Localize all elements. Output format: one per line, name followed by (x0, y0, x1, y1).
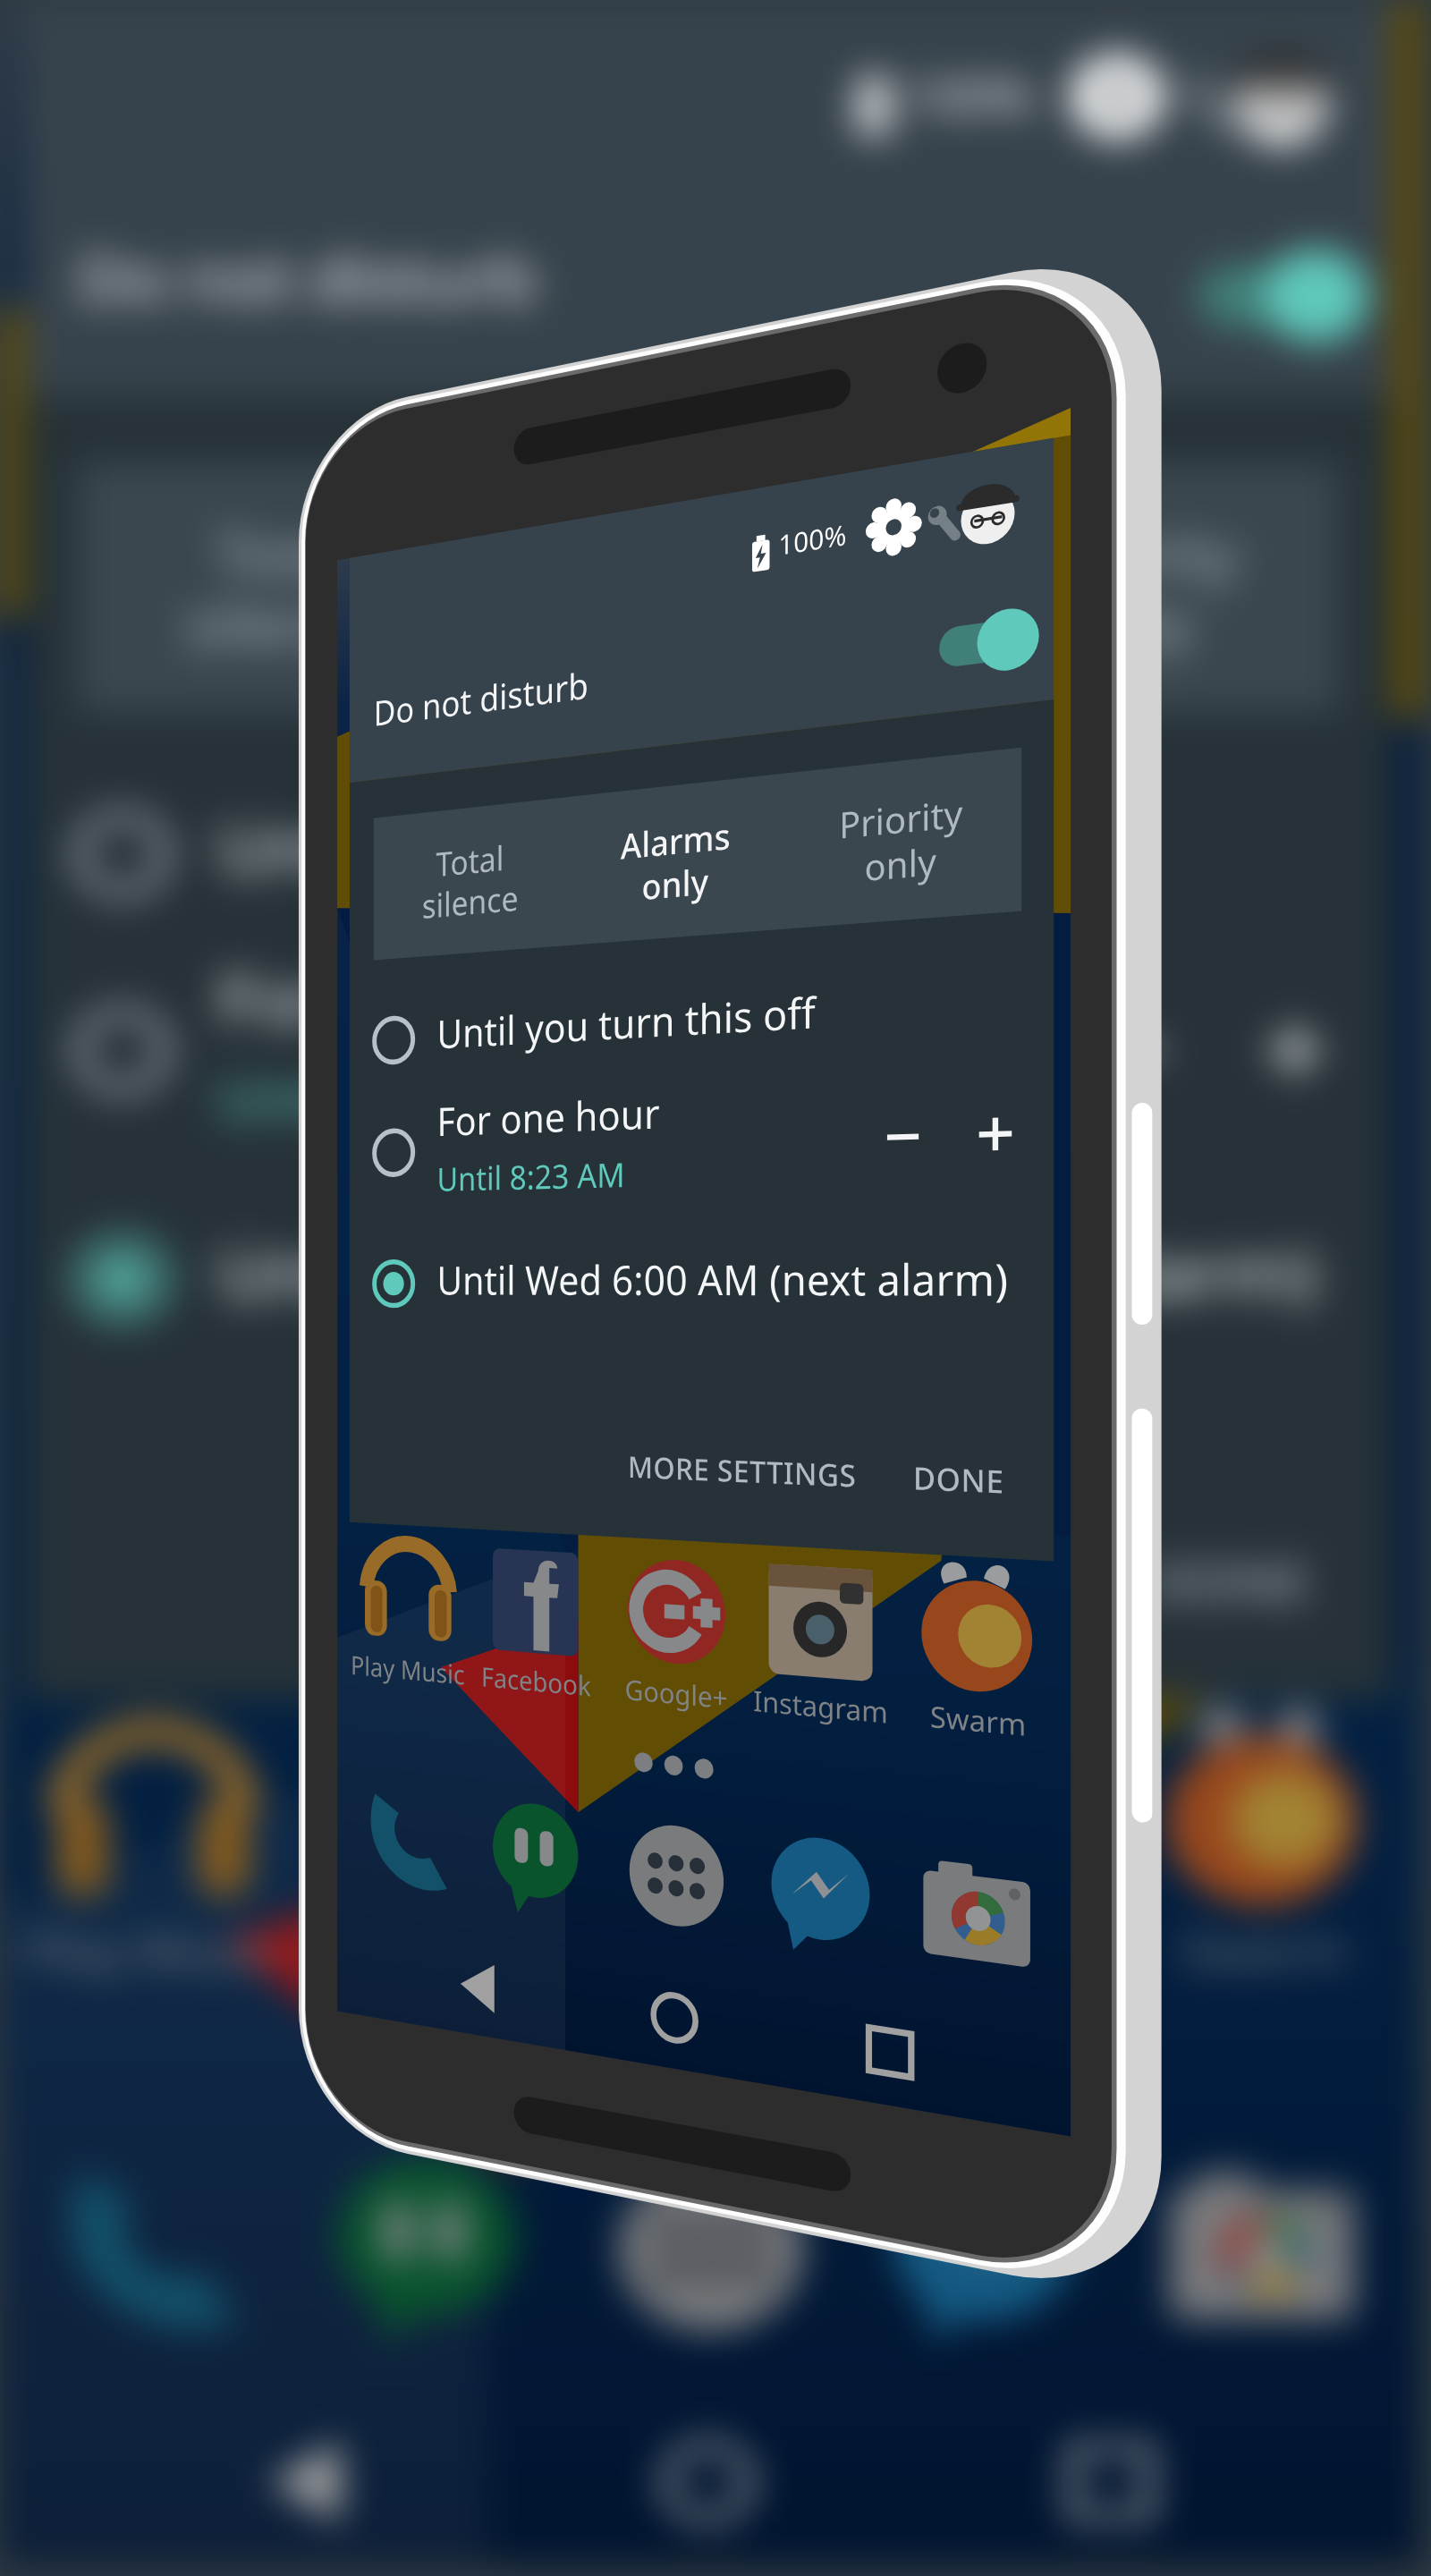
staticText: Priority only (839, 787, 963, 893)
button[interactable]: Until Wed 6:00 AM (next alarm) (350, 1220, 1054, 1346)
staticText: DONE (1152, 1549, 1310, 1615)
staticText: 100% (778, 515, 847, 564)
button[interactable]: Until you turn this off (24, 759, 1394, 949)
button[interactable]: Until Wed 6:00 AM (next alarm) (24, 1184, 1394, 1374)
staticText: Until you turn this off (218, 801, 976, 894)
staticText: MORE SETTINGS (628, 1446, 857, 1496)
staticText: Instagram (753, 1681, 888, 1732)
staticText: For one hour (218, 952, 680, 1045)
button[interactable]: MORE SETTINGS (628, 1446, 857, 1496)
button[interactable]: Priority only (785, 747, 1021, 929)
staticText: DONE (913, 1457, 1004, 1503)
staticText: Swarm (1181, 1919, 1347, 1981)
staticText: Total silence (185, 514, 392, 662)
button[interactable]: For one hour (350, 1069, 1054, 1208)
staticText: Total silence (422, 833, 519, 928)
staticText: Instagram (859, 1919, 1107, 1981)
staticText: Google+ (609, 1919, 811, 1981)
staticText: Play Music (350, 1647, 465, 1692)
staticText: Facebook (481, 1658, 591, 1704)
staticText: Alarms only (601, 514, 816, 662)
button[interactable]: Do not disturb toggle (939, 602, 1039, 682)
staticText: Until 8:23 AM (218, 1059, 611, 1135)
button[interactable]: For one hour (24, 955, 1394, 1146)
staticText: Until Wed 6:00 AM (next alarm) (218, 1226, 1318, 1319)
staticText: 100% (907, 66, 1033, 126)
button[interactable]: Alarms only (497, 463, 918, 712)
button[interactable]: Total silence (374, 797, 569, 960)
button[interactable]: Do not disturb toggle (1198, 245, 1369, 347)
staticText: Alarms only (620, 811, 731, 911)
staticText: Swarm (930, 1696, 1026, 1745)
staticText: Facebook (313, 1919, 542, 1981)
staticText: Priority only (1019, 514, 1239, 662)
staticText: Play Music (25, 1919, 278, 1981)
button[interactable]: Alarms only (569, 773, 784, 945)
button[interactable]: DONE (1152, 1549, 1310, 1615)
staticText: Do not disturb (374, 660, 589, 736)
staticText: Until 8:23 AM (437, 1151, 625, 1201)
staticText: MORE SETTINGS (616, 1549, 1051, 1615)
staticText: Until you turn this off (437, 983, 816, 1061)
button[interactable]: Total silence (78, 463, 497, 712)
button[interactable]: Until you turn this off (350, 940, 1054, 1097)
staticText: Do not disturb (78, 237, 537, 319)
staticText: For one hour (437, 1085, 660, 1148)
button[interactable]: Priority only (918, 463, 1339, 712)
button[interactable]: MORE SETTINGS (616, 1549, 1051, 1615)
staticText: Google+ (625, 1670, 728, 1717)
button[interactable]: DONE (913, 1457, 1004, 1503)
staticText: Until Wed 6:00 AM (next alarm) (437, 1249, 1009, 1309)
